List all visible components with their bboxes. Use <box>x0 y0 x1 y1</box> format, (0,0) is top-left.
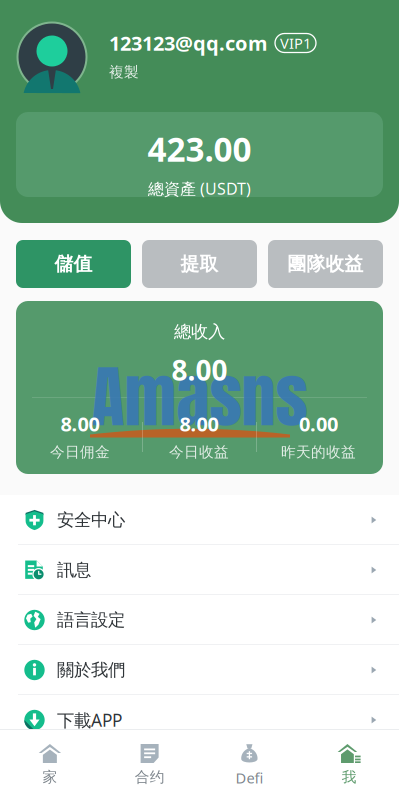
staticText: 關於我們 <box>57 659 125 681</box>
staticText: 昨天的收益 <box>281 443 356 461</box>
staticText: 8.00 <box>60 410 99 437</box>
button[interactable]: 關於我們 <box>0 645 399 695</box>
staticText: 語言設定 <box>57 609 125 631</box>
button[interactable]: 提取 <box>142 240 257 288</box>
staticText: 0.00 <box>299 410 338 437</box>
button[interactable]: 儲值 <box>16 240 131 288</box>
staticText: 今日佣金 <box>50 443 110 461</box>
staticText: 總資產 (USDT) <box>148 178 251 199</box>
button[interactable]: Defi <box>199 730 299 799</box>
staticText: 8.00 <box>171 351 227 388</box>
staticText: 總收入 <box>174 321 225 342</box>
staticText: 8.00 <box>179 410 218 437</box>
staticText: VIP1 <box>280 33 311 53</box>
button[interactable]: 下載APP <box>0 695 399 745</box>
button[interactable]: 家 <box>0 730 100 799</box>
button[interactable]: 我 <box>299 730 399 799</box>
staticText: 訊息 <box>57 559 91 581</box>
button[interactable]: 複製 <box>109 54 139 81</box>
button[interactable]: 訊息 <box>0 545 399 595</box>
staticText: 合约 <box>135 768 165 786</box>
staticText: Defi <box>235 768 263 787</box>
staticText: 今日收益 <box>169 443 229 461</box>
staticText: 儲值 <box>54 252 92 275</box>
staticText: 家 <box>42 768 57 786</box>
staticText: 我 <box>342 768 357 786</box>
staticText: 423.00 <box>147 127 251 171</box>
button[interactable]: 語言設定 <box>0 595 399 645</box>
staticText: 下載APP <box>57 708 122 731</box>
button[interactable]: 團隊收益 <box>268 240 383 288</box>
staticText: 團隊收益 <box>287 252 363 275</box>
button[interactable]: VIP1 <box>275 33 316 52</box>
staticText: 安全中心 <box>57 509 125 531</box>
staticText: 123123@qq.com <box>109 30 268 56</box>
staticText: Amasns <box>91 345 307 448</box>
button[interactable]: 合约 <box>100 730 200 799</box>
staticText: 提取 <box>180 252 218 275</box>
button[interactable]: 安全中心 <box>0 495 399 545</box>
staticText: 複製 <box>109 63 139 81</box>
